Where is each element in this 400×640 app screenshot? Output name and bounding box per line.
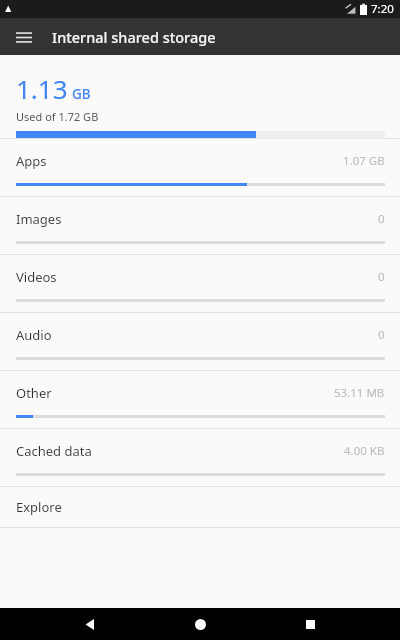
staticText: Apps [16, 152, 47, 170]
button[interactable]: Open navigation menu [10, 23, 38, 51]
button[interactable]: Other [0, 370, 400, 428]
staticText: Explore [16, 498, 62, 516]
button[interactable]: Recent apps [290, 608, 330, 640]
button[interactable]: Apps [0, 138, 400, 196]
staticText: GB [72, 85, 91, 103]
staticText: Internal shared storage [52, 27, 216, 47]
button[interactable]: Videos [0, 254, 400, 312]
staticText: 7:20 [371, 1, 394, 17]
button[interactable]: Images [0, 196, 400, 254]
button[interactable]: Audio [0, 312, 400, 370]
button[interactable]: Back [70, 608, 110, 640]
button[interactable]: Home [180, 608, 220, 640]
staticText: Videos [16, 268, 57, 286]
staticText: Other [16, 384, 52, 402]
staticText: 4.00 KB [344, 443, 385, 459]
button[interactable]: Explore [0, 486, 400, 528]
staticText: 0 [378, 211, 385, 227]
staticText: 53.11 MB [334, 385, 385, 401]
staticText: Used of 1.72 GB [16, 109, 99, 124]
staticText: Cached data [16, 442, 92, 460]
staticText: Audio [16, 326, 52, 344]
staticText: 1.07 GB [343, 153, 385, 169]
staticText: Images [16, 210, 62, 228]
staticText: 0 [378, 269, 385, 285]
button[interactable]: Cached data [0, 428, 400, 486]
staticText: 0 [378, 327, 385, 343]
staticText: 1.13 [16, 71, 68, 106]
